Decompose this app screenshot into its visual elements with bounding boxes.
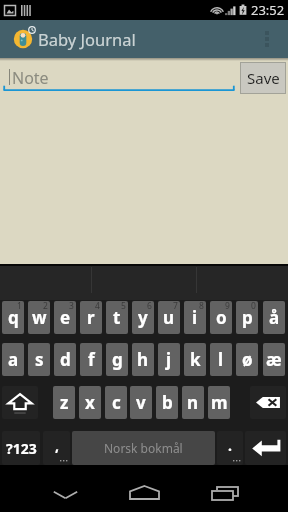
button[interactable]: v (130, 386, 152, 419)
staticText: h (137, 348, 149, 371)
staticText: Note (12, 67, 49, 89)
staticText: 23:52 (251, 1, 285, 19)
staticText: 1 (17, 301, 22, 312)
staticText: Save (247, 68, 280, 88)
button[interactable]: Hide keyboard (32, 465, 98, 512)
staticText: b (162, 391, 173, 414)
staticText: . (228, 436, 232, 455)
button[interactable]: o (210, 301, 232, 334)
button[interactable]: w (28, 301, 50, 334)
button[interactable]: m (208, 386, 230, 419)
staticText: e (60, 306, 71, 329)
staticText: w (32, 306, 47, 329)
staticText: x (85, 391, 95, 414)
staticText: ?123 (6, 439, 37, 458)
staticText: v (136, 391, 146, 414)
staticText: l (218, 348, 224, 371)
staticText: p (242, 306, 253, 329)
button[interactable]: l (210, 343, 232, 376)
button[interactable]: e (54, 301, 76, 334)
staticText: n (187, 391, 199, 414)
button[interactable]: å (263, 301, 285, 334)
staticText: 8 (199, 301, 204, 312)
staticText: 9 (225, 301, 230, 312)
staticText: æ (266, 348, 282, 371)
button[interactable]: x (79, 386, 101, 419)
staticText: 2 (43, 301, 48, 312)
staticText: 6 (147, 301, 152, 312)
staticText: g (112, 348, 123, 371)
staticText: 4 (95, 301, 100, 312)
button[interactable]: Save (240, 62, 286, 94)
button[interactable]: Home (112, 465, 177, 512)
staticText: Baby Journal (38, 28, 136, 50)
button[interactable]: i (184, 301, 206, 334)
staticText: r (87, 306, 95, 329)
staticText: 0 (251, 301, 256, 312)
staticText: o (216, 306, 227, 329)
button[interactable]: y (132, 301, 154, 334)
staticText: y (138, 306, 148, 329)
staticText: f (88, 348, 95, 371)
button[interactable]: z (53, 386, 75, 419)
button[interactable]: Norsk bokmål (72, 431, 215, 465)
staticText: k (190, 348, 201, 371)
staticText: j (166, 348, 172, 371)
button[interactable]: h (132, 343, 154, 376)
staticText: i (192, 306, 198, 329)
staticText: s (35, 348, 44, 371)
staticText: 5 (121, 301, 126, 312)
button[interactable]: Note (3, 64, 235, 92)
button[interactable]: Backspace (250, 386, 286, 419)
staticText: 3 (69, 301, 74, 312)
button[interactable]: g (106, 343, 128, 376)
button[interactable]: r (80, 301, 102, 334)
staticText: q (8, 306, 19, 329)
button[interactable]: Enter (245, 431, 286, 465)
staticText: Norsk bokmål (104, 440, 183, 456)
button[interactable]: . (217, 431, 243, 465)
button[interactable]: q (2, 301, 24, 334)
button[interactable]: s (28, 343, 50, 376)
button[interactable]: Shift (2, 386, 38, 419)
button[interactable]: u (158, 301, 180, 334)
staticText: , (55, 436, 59, 455)
button[interactable]: k (184, 343, 206, 376)
staticText: 7 (173, 301, 178, 312)
button[interactable]: a (2, 343, 24, 376)
button[interactable]: Recents (190, 465, 256, 512)
button[interactable]: d (54, 343, 76, 376)
staticText: å (269, 306, 280, 329)
button[interactable]: t (106, 301, 128, 334)
button[interactable]: j (158, 343, 180, 376)
staticText: t (113, 306, 121, 329)
button[interactable]: c (105, 386, 127, 419)
staticText: z (60, 391, 69, 414)
button[interactable]: ø (236, 343, 258, 376)
staticText: a (8, 348, 19, 371)
staticText: u (163, 306, 175, 329)
staticText: c (112, 391, 121, 414)
button[interactable]: , (43, 431, 70, 465)
staticText: ø (242, 348, 253, 371)
staticText: d (60, 348, 71, 371)
button[interactable]: b (156, 386, 178, 419)
button[interactable]: æ (263, 343, 285, 376)
staticText: m (211, 391, 228, 414)
button[interactable]: n (182, 386, 204, 419)
button[interactable]: p (236, 301, 258, 334)
button[interactable]: ?123 (2, 431, 40, 465)
button[interactable]: f (80, 343, 102, 376)
